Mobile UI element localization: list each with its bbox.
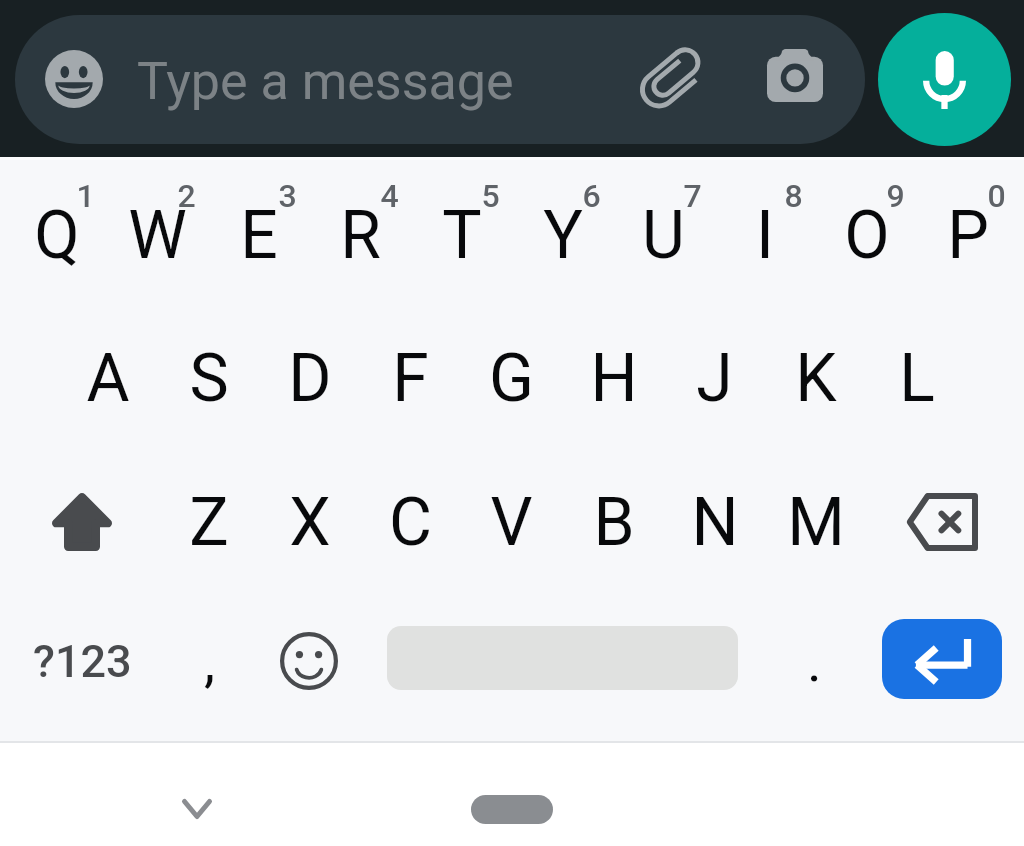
staticText: U — [642, 197, 685, 274]
staticText: L — [899, 340, 935, 417]
staticText: 9 — [886, 177, 905, 215]
button[interactable]: L — [866, 308, 967, 448]
button[interactable]: ?123 — [10, 611, 154, 711]
staticText: Type a message — [137, 51, 514, 112]
staticText: K — [795, 340, 837, 417]
staticText: R — [340, 197, 381, 274]
button[interactable]: P — [917, 165, 1018, 305]
staticText: D — [288, 340, 332, 417]
staticText: V — [490, 484, 533, 561]
button[interactable]: Type a message — [15, 15, 865, 144]
staticText: 2 — [177, 177, 196, 215]
button[interactable]: R — [310, 165, 411, 305]
button[interactable]: O — [816, 165, 917, 305]
button[interactable]: Camera — [767, 49, 823, 102]
button[interactable]: Record voice message — [878, 13, 1011, 146]
button[interactable]: Z — [158, 452, 259, 592]
staticText: P — [947, 197, 989, 274]
button[interactable]: Backspace — [864, 459, 1018, 585]
staticText: 7 — [683, 177, 702, 215]
staticText: E — [240, 197, 278, 274]
staticText: Q — [34, 197, 80, 274]
button[interactable]: Hide keyboard — [157, 780, 237, 838]
staticText: W — [128, 197, 187, 274]
button[interactable]: K — [765, 308, 866, 448]
button[interactable]: X — [259, 452, 360, 592]
button[interactable]: S — [158, 308, 259, 448]
staticText: G — [489, 340, 534, 417]
staticText: O — [844, 197, 890, 274]
staticText: N — [691, 484, 739, 561]
staticText: , — [204, 629, 216, 695]
button[interactable]: . — [764, 611, 864, 711]
staticText: J — [696, 340, 733, 417]
button[interactable]: Enter — [882, 619, 1002, 699]
staticText: H — [590, 340, 638, 417]
button[interactable]: B — [563, 452, 664, 592]
staticText: 5 — [481, 177, 500, 215]
button[interactable]: W — [107, 165, 208, 305]
staticText: I — [756, 197, 774, 274]
button[interactable]: Attach — [636, 46, 702, 112]
staticText: . — [807, 629, 822, 695]
button[interactable]: E — [208, 165, 309, 305]
button[interactable]: A — [57, 308, 158, 448]
staticText: 4 — [380, 177, 399, 215]
staticText: 6 — [582, 177, 601, 215]
staticText: S — [189, 340, 229, 417]
button[interactable]: Shift — [5, 459, 159, 585]
staticText: A — [86, 340, 130, 417]
staticText: 3 — [278, 177, 297, 215]
button[interactable]: V — [461, 452, 562, 592]
staticText: C — [389, 484, 432, 561]
button[interactable]: Y — [512, 165, 613, 305]
staticText: 8 — [784, 177, 803, 215]
staticText: M — [787, 484, 845, 561]
staticText: 1 — [76, 177, 95, 215]
button[interactable]: T — [411, 165, 512, 305]
button[interactable]: Q — [6, 165, 107, 305]
button[interactable]: F — [360, 308, 461, 448]
button[interactable]: I — [714, 165, 815, 305]
button[interactable]: , — [156, 611, 260, 711]
button[interactable]: G — [461, 308, 562, 448]
button[interactable]: M — [765, 452, 866, 592]
staticText: ?123 — [33, 635, 132, 688]
staticText: T — [442, 197, 482, 274]
staticText: B — [593, 484, 635, 561]
staticText: X — [289, 484, 331, 561]
button[interactable]: Emoji — [260, 611, 358, 711]
staticText: Z — [189, 484, 229, 561]
button[interactable]: N — [664, 452, 765, 592]
button[interactable]: D — [259, 308, 360, 448]
button[interactable]: C — [360, 452, 461, 592]
button[interactable]: H — [563, 308, 664, 448]
staticText: F — [392, 340, 429, 417]
button[interactable]: U — [613, 165, 714, 305]
button[interactable]: J — [664, 308, 765, 448]
staticText: 0 — [987, 177, 1006, 215]
staticText: Y — [543, 197, 583, 274]
